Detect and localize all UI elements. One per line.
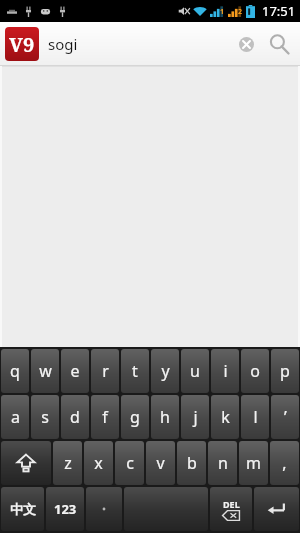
staticText: DEL <box>223 498 240 510</box>
button[interactable]: j <box>181 395 209 439</box>
button[interactable]: a <box>1 395 29 439</box>
staticText: f <box>102 406 108 428</box>
button[interactable]: Enter <box>254 487 299 531</box>
button[interactable]: y <box>151 349 179 393</box>
button[interactable]: t <box>121 349 149 393</box>
button[interactable]: g <box>121 395 149 439</box>
staticText: 1 <box>220 7 225 17</box>
staticText: p <box>280 360 290 382</box>
button[interactable]: b <box>177 441 206 485</box>
button[interactable]: 中文 <box>1 487 44 531</box>
button[interactable]: d <box>61 395 89 439</box>
button[interactable]: Space <box>124 487 208 531</box>
staticText: r <box>102 360 109 382</box>
button[interactable]: ’ <box>271 395 299 439</box>
staticText: , <box>282 452 287 474</box>
staticText: b <box>187 452 197 474</box>
staticText: 2 <box>238 7 243 17</box>
staticText: ’ <box>284 406 287 428</box>
button[interactable]: Shift <box>1 441 51 485</box>
staticText: 中文 <box>10 501 36 517</box>
staticText: l <box>253 406 258 428</box>
staticText: j <box>193 406 198 428</box>
button[interactable]: u <box>181 349 209 393</box>
staticText: k <box>221 406 230 428</box>
staticText: sogi <box>48 34 78 54</box>
button[interactable]: i <box>211 349 239 393</box>
button[interactable]: k <box>211 395 239 439</box>
staticText: q <box>10 360 20 382</box>
staticText: y <box>161 360 170 382</box>
button[interactable]: o <box>241 349 269 393</box>
button[interactable]: Period <box>86 487 122 531</box>
staticText: t <box>132 360 138 382</box>
staticText: e <box>70 360 80 382</box>
button[interactable]: Delete <box>210 487 252 531</box>
button[interactable]: m <box>239 441 268 485</box>
button[interactable]: Clear query <box>232 30 260 58</box>
button[interactable]: , <box>270 441 299 485</box>
button[interactable]: Search <box>263 28 295 60</box>
staticText: 123 <box>54 500 77 518</box>
staticText: i <box>223 360 228 382</box>
staticText: o <box>250 360 260 382</box>
button[interactable]: r <box>91 349 119 393</box>
button[interactable]: f <box>91 395 119 439</box>
button[interactable]: w <box>31 349 59 393</box>
staticText: d <box>70 406 80 428</box>
button[interactable]: 123 <box>46 487 84 531</box>
button[interactable]: v <box>146 441 175 485</box>
staticText: c <box>126 452 134 474</box>
button[interactable]: n <box>208 441 237 485</box>
staticText: s <box>41 406 49 428</box>
staticText: a <box>11 406 20 428</box>
button[interactable]: h <box>151 395 179 439</box>
button[interactable]: p <box>271 349 299 393</box>
staticText: x <box>94 452 103 474</box>
staticText: u <box>190 360 200 382</box>
button[interactable]: c <box>115 441 144 485</box>
staticText: m <box>246 452 261 474</box>
staticText: n <box>218 452 228 474</box>
staticText: g <box>130 406 140 428</box>
staticText: V9 <box>9 31 35 58</box>
button[interactable]: q <box>1 349 29 393</box>
button[interactable]: e <box>61 349 89 393</box>
button[interactable]: l <box>241 395 269 439</box>
staticText: 17:51 <box>262 2 296 20</box>
button[interactable]: s <box>31 395 59 439</box>
button[interactable]: z <box>53 441 82 485</box>
button[interactable]: x <box>84 441 113 485</box>
staticText: w <box>39 360 52 382</box>
button[interactable]: V9 home <box>5 27 39 61</box>
staticText: h <box>160 406 170 428</box>
staticText: v <box>156 452 165 474</box>
staticText: z <box>64 452 72 474</box>
